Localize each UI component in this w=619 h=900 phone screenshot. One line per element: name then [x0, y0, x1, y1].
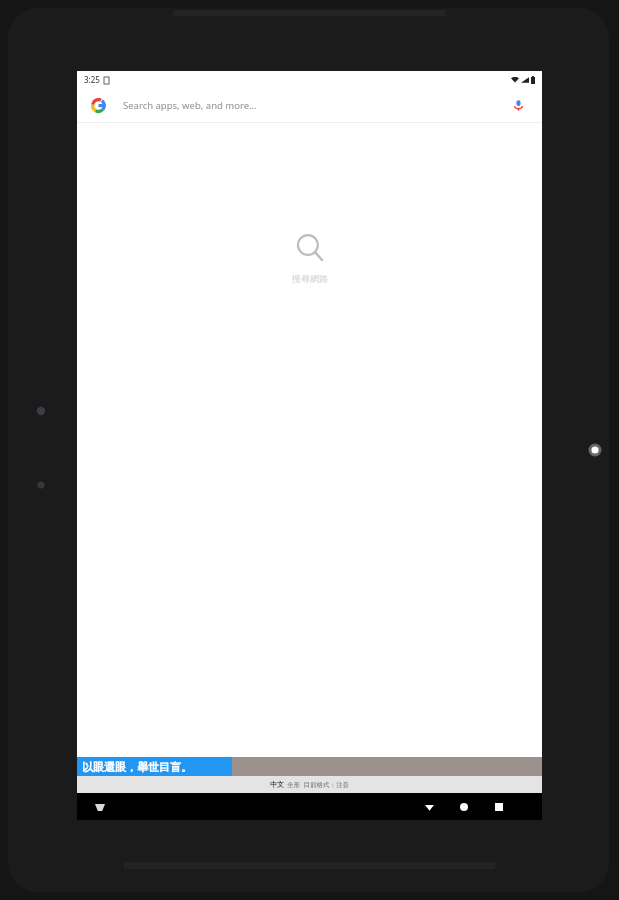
button[interactable]: Search apps, web, and more… [77, 88, 542, 122]
staticText: Search apps, web, and more… [123, 99, 257, 112]
button[interactable]: Hide keyboard [90, 797, 110, 817]
staticText: 以眼還眼，舉世目盲。 [82, 760, 192, 774]
staticText: 搜尋網路 [292, 273, 328, 284]
button[interactable]: Voice search [508, 95, 528, 115]
button[interactable]: Back [416, 794, 442, 820]
button[interactable]: Recent apps [486, 794, 512, 820]
staticText: 全形 目前格式：注音 [287, 780, 349, 789]
staticText: 中文 [270, 780, 284, 789]
staticText: 3:25 [84, 74, 100, 85]
button[interactable]: Home [451, 794, 477, 820]
button[interactable]: 以眼還眼，舉世目盲。 [77, 757, 232, 776]
